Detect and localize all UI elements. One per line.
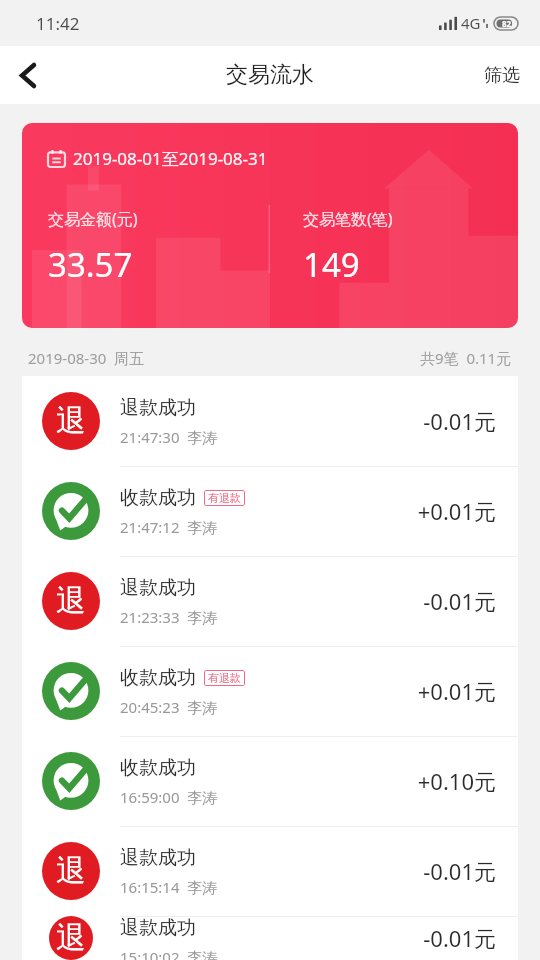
staticText: 共9笔 0.11元 <box>420 348 512 368</box>
button[interactable]: 收款成功 <box>22 736 518 826</box>
staticText: 21:47:30 李涛 <box>120 427 218 447</box>
staticText: 退款成功 <box>120 576 196 600</box>
staticText: 16:15:14 李涛 <box>120 877 218 897</box>
staticText: +0.01元 <box>417 496 496 526</box>
staticText: 21:47:12 李涛 <box>120 517 218 537</box>
staticText: 2019-08-01至2019-08-31 <box>73 147 268 170</box>
staticText: 收款成功 <box>120 486 196 510</box>
staticText: 退 <box>56 402 86 440</box>
staticText: 149 <box>303 242 360 287</box>
staticText: 退款成功 <box>120 916 196 940</box>
button[interactable]: 收款成功 <box>22 466 518 556</box>
staticText: 筛选 <box>484 64 520 87</box>
staticText: 退 <box>56 919 86 957</box>
staticText: 20:45:23 李涛 <box>120 697 218 717</box>
staticText: 82 <box>502 18 512 29</box>
staticText: -0.01元 <box>423 406 496 436</box>
staticText: 有退款 <box>208 671 241 685</box>
staticText: 11:42 <box>36 12 80 35</box>
staticText: -0.01元 <box>423 586 496 616</box>
button[interactable]: 收款成功 <box>22 646 518 736</box>
staticText: +0.01元 <box>417 676 496 706</box>
staticText: 33.57 <box>48 242 133 287</box>
staticText: 退款成功 <box>120 396 196 420</box>
button[interactable]: 退 <box>22 376 518 466</box>
staticText: 交易笔数(笔) <box>303 208 393 230</box>
staticText: -0.01元 <box>423 856 496 886</box>
staticText: 退款成功 <box>120 846 196 870</box>
staticText: 交易流水 <box>226 61 314 89</box>
button[interactable]: 筛选 <box>464 46 540 104</box>
button[interactable]: 退 <box>22 826 518 916</box>
button[interactable]: 退 <box>22 556 518 646</box>
button[interactable]: Back <box>0 47 56 103</box>
staticText: 交易金额(元) <box>48 208 138 230</box>
button[interactable]: 2019-08-01至2019-08-31 <box>22 123 518 328</box>
button[interactable]: 退 <box>22 916 518 960</box>
staticText: 退 <box>56 852 86 890</box>
staticText: 收款成功 <box>120 666 196 690</box>
staticText: 收款成功 <box>120 756 196 780</box>
staticText: -0.01元 <box>423 923 496 953</box>
staticText: 有退款 <box>208 491 241 505</box>
staticText: 15:10:02 李涛 <box>120 947 218 960</box>
staticText: 退 <box>56 582 86 620</box>
staticText: 21:23:33 李涛 <box>120 607 218 627</box>
staticText: +0.10元 <box>417 766 496 796</box>
staticText: 2019-08-30 周五 <box>28 348 145 368</box>
staticText: 16:59:00 李涛 <box>120 787 218 807</box>
staticText: 4G <box>461 13 481 33</box>
